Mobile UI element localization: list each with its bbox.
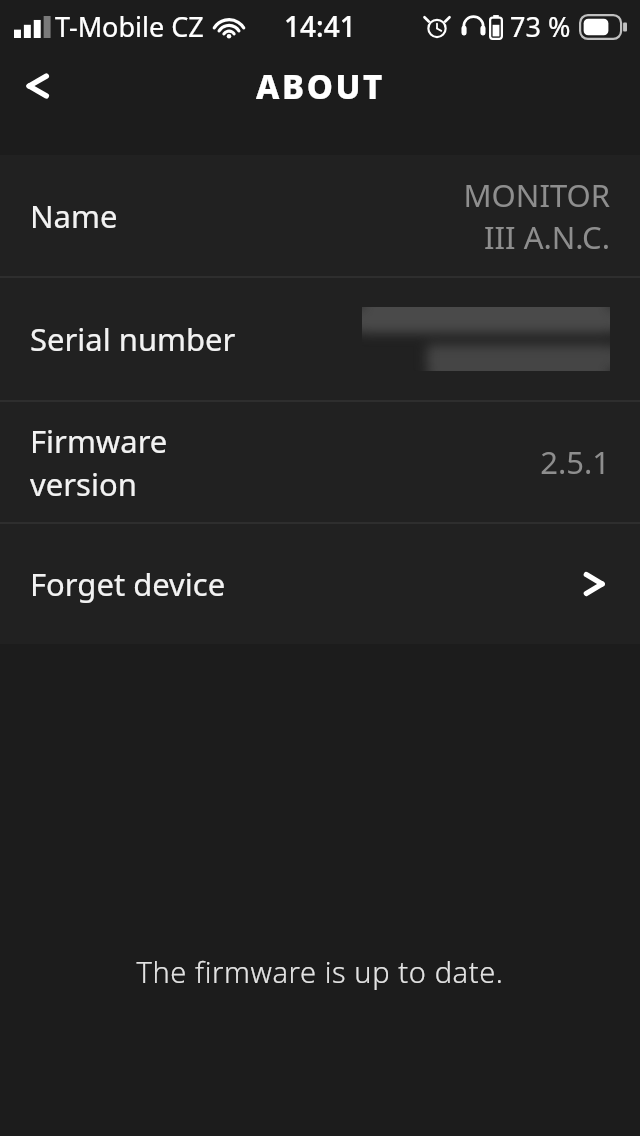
button[interactable]: Back <box>0 52 76 120</box>
staticText: Firmware version <box>30 420 540 505</box>
button[interactable]: Firmware version <box>0 402 640 522</box>
button[interactable]: Name <box>0 155 640 276</box>
staticText: Name <box>30 195 463 237</box>
button[interactable]: Forget device <box>0 524 640 644</box>
staticText: T-Mobile CZ <box>55 8 204 45</box>
staticText: MONITOR III A.N.C. <box>463 174 610 258</box>
staticText: 14:41 <box>284 7 356 45</box>
staticText: ABOUT <box>256 64 385 109</box>
staticText: The firmware is up to date. <box>136 952 504 991</box>
staticText: 73 % <box>510 8 571 45</box>
staticText: Forget device <box>30 563 582 605</box>
staticText: 2.5.1 <box>540 441 610 483</box>
staticText: Serial number <box>30 318 362 360</box>
button[interactable]: Serial number <box>0 278 640 400</box>
